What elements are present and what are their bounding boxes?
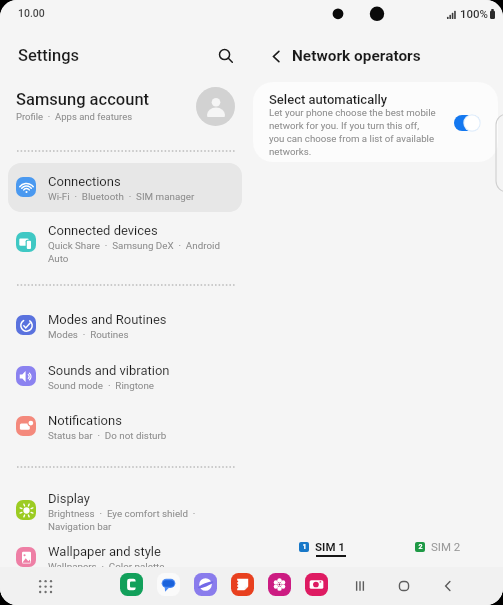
- staticText: Status bar · Do not disturb: [48, 430, 167, 441]
- button[interactable]: Wallpaper and style: [8, 533, 242, 582]
- staticText: SIM 1: [315, 540, 345, 553]
- staticText: Sounds and vibration: [48, 363, 170, 378]
- button[interactable]: Samsung account: [8, 80, 242, 134]
- staticText: Brightness · Eye comfort shield · Naviga…: [48, 508, 196, 533]
- staticText: 2: [418, 543, 423, 551]
- button[interactable]: Search: [208, 38, 244, 74]
- staticText: Profile · Apps and features: [16, 111, 133, 122]
- staticText: Wallpapers · Color palette: [48, 561, 165, 572]
- staticText: Samsung account: [16, 90, 150, 109]
- button[interactable]: Back: [258, 38, 294, 74]
- button[interactable]: Recents: [347, 573, 373, 599]
- staticText: Wi-Fi · Bluetooth · SIM manager: [48, 191, 195, 202]
- staticText: Wallpaper and style: [48, 544, 161, 559]
- button[interactable]: Select automatically: [453, 112, 483, 134]
- button[interactable]: Camera: [305, 573, 328, 596]
- button[interactable]: Display: [8, 480, 242, 542]
- button[interactable]: Phone: [120, 573, 143, 596]
- button[interactable]: Back: [435, 573, 461, 599]
- staticText: Display: [48, 491, 90, 506]
- button[interactable]: Messages: [157, 573, 180, 596]
- staticText: Notifications: [48, 413, 122, 428]
- staticText: Connected devices: [48, 223, 158, 238]
- button[interactable]: Galaxy Store: [268, 573, 291, 596]
- staticText: Connections: [48, 174, 121, 189]
- staticText: SIM 2: [431, 540, 461, 553]
- button[interactable]: Notes: [231, 573, 254, 596]
- button[interactable]: Connected devices: [8, 212, 242, 274]
- staticText: Let your phone choose the best mobile ne…: [269, 107, 436, 157]
- button[interactable]: Internet: [194, 573, 217, 596]
- staticText: Network operators: [292, 47, 421, 65]
- staticText: Sound mode · Ringtone: [48, 380, 154, 391]
- staticText: Select automatically: [269, 92, 388, 107]
- staticText: Quick Share · Samsung DeX · Android Auto: [48, 240, 220, 265]
- button[interactable]: Sounds and vibration: [8, 352, 242, 401]
- staticText: 100%: [460, 7, 489, 20]
- staticText: Modes and Routines: [48, 312, 167, 327]
- staticText: Modes · Routines: [48, 329, 129, 340]
- staticText: 10.00: [18, 7, 45, 19]
- button[interactable]: 2: [412, 537, 464, 556]
- button[interactable]: Select automatically: [253, 82, 498, 162]
- staticText: Settings: [18, 46, 80, 65]
- button[interactable]: Connections: [8, 163, 242, 212]
- button[interactable]: Modes and Routines: [8, 301, 242, 350]
- staticText: 1: [302, 543, 307, 551]
- button[interactable]: Home: [391, 573, 417, 599]
- button[interactable]: Notifications: [8, 402, 242, 451]
- button[interactable]: 1: [296, 537, 348, 556]
- button[interactable]: Apps: [32, 573, 58, 599]
